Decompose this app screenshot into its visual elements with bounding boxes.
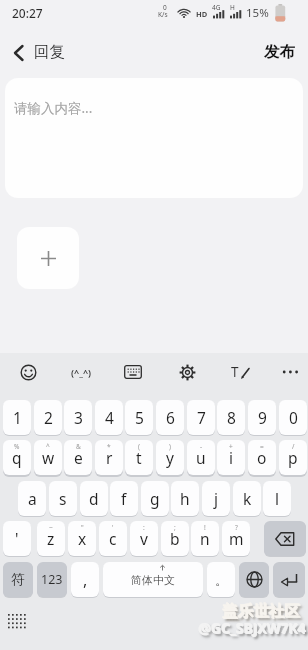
staticText: x [78,528,87,549]
button[interactable]: 0 [279,400,307,435]
staticText: w [42,447,55,468]
staticText: 7 [197,407,206,428]
staticText: 盖乐世社区 [222,601,300,621]
staticText: " [81,523,84,532]
button[interactable]: c [99,521,127,556]
staticText: & [76,442,81,451]
button[interactable]: k [233,481,261,516]
button[interactable]: i [217,440,245,475]
staticText: 盖乐世社区 [223,602,301,622]
button[interactable]: 2 [34,400,62,435]
button[interactable] [11,355,45,389]
button[interactable] [273,562,305,597]
button[interactable]: 回复 [6,38,78,66]
button[interactable]: x [68,521,96,556]
staticText: k [243,488,252,509]
staticText: r [106,447,113,468]
staticText: ^ [46,442,50,451]
button[interactable]: l [263,481,291,516]
button[interactable]: 简体中文 [103,562,203,597]
button[interactable]: b [161,521,189,556]
button[interactable] [4,609,30,633]
button[interactable]: 3 [64,400,92,435]
button[interactable]: 6 [156,400,184,435]
staticText: d [89,488,99,509]
staticText: 0 [163,3,167,12]
button[interactable]: n [191,521,219,556]
button[interactable]: r [95,440,123,475]
button[interactable]: f [110,481,138,516]
staticText: ? [235,523,238,532]
button[interactable]: ' [3,521,31,556]
button[interactable]: o [248,440,276,475]
button[interactable]: p [279,440,307,475]
staticText: t [136,447,142,468]
button[interactable]: 请输入内容... [5,78,303,198]
staticText: 0 [289,407,298,428]
staticText: * [107,442,111,451]
button[interactable]: T [224,355,258,389]
staticText: - [200,442,203,451]
button[interactable]: 5 [125,400,153,435]
staticText: H [230,3,235,12]
staticText: 。 [215,572,228,588]
button[interactable]: (^_^) [62,355,100,389]
button[interactable] [239,562,269,597]
staticText: 简体中文 [131,573,175,587]
button[interactable]: 8 [217,400,245,435]
staticText: % [14,442,20,451]
staticText: s [59,488,67,509]
staticText: T [231,363,239,381]
staticText: 4G [212,3,221,12]
button[interactable]: t [125,440,153,475]
staticText: ( [138,442,140,451]
button[interactable]: v [130,521,158,556]
button[interactable]: 符 [3,562,33,597]
staticText: n [200,528,210,549]
button[interactable]: y [156,440,184,475]
button[interactable]: 123 [37,562,67,597]
staticText: g [150,488,160,509]
staticText: , [83,569,88,591]
staticText: 9 [258,407,267,428]
button[interactable]: w [34,440,62,475]
staticText: 6 [166,407,175,428]
staticText: 123 [41,571,63,588]
button[interactable]: j [202,481,230,516]
button[interactable]: s [49,481,77,516]
staticText: z [47,528,55,549]
staticText: 请输入内容... [14,99,93,117]
staticText: 符 [11,571,25,588]
button[interactable]: z [37,521,65,556]
button[interactable]: q [3,440,31,475]
button[interactable]: 发布 [255,38,303,66]
button[interactable] [274,355,308,389]
button[interactable]: , [71,562,99,597]
button[interactable]: h [171,481,199,516]
staticText: a [28,488,37,509]
button[interactable]: d [80,481,108,516]
button[interactable]: 7 [187,400,215,435]
staticText: b [170,528,180,549]
button[interactable]: a [18,481,46,516]
button[interactable]: 4 [95,400,123,435]
button[interactable]: e [64,440,92,475]
button[interactable]: m [222,521,250,556]
staticText: u [196,447,206,468]
button[interactable] [17,227,79,289]
button[interactable]: 1 [3,400,31,435]
staticText: o [257,447,267,468]
button[interactable]: g [141,481,169,516]
button[interactable] [116,355,150,389]
button[interactable]: 。 [207,562,235,597]
staticText: ! [204,523,206,532]
button[interactable]: u [187,440,215,475]
staticText: 20:27 [12,5,43,21]
staticText: 2 [44,407,53,428]
staticText: c [109,528,117,549]
button[interactable] [170,355,204,389]
staticText: : [143,523,145,532]
button[interactable]: 9 [248,400,276,435]
button[interactable] [264,521,306,556]
staticText: ' [112,523,114,532]
